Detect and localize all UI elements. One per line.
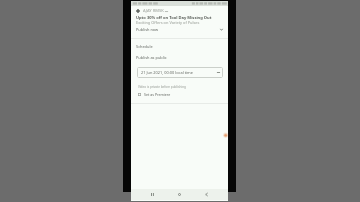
staticText: AJAY RMSK	[143, 8, 164, 14]
staticText: Exciting Offers on Variety of Pulses	[136, 20, 200, 25]
staticText: Upto 30% off on Tool Day Missing Out	[136, 15, 212, 21]
button[interactable]: Set as Premiere	[138, 91, 171, 97]
staticText: Set as Premiere	[144, 92, 171, 97]
button[interactable]: Recent apps	[147, 189, 158, 200]
button[interactable]: Publish now	[131, 26, 228, 32]
button[interactable]: 21 Jun 2021, 00:00 local time	[137, 67, 223, 78]
button[interactable]: Home	[174, 189, 185, 200]
staticText: Publish now	[136, 27, 159, 32]
staticText: Video is private before publishing	[138, 85, 186, 89]
button[interactable]: Back	[201, 189, 212, 200]
button[interactable]: AJAY RMSK	[131, 8, 228, 14]
staticText: Publish as public	[136, 55, 167, 60]
staticText: 21 Jun 2021, 00:00 local time	[141, 70, 193, 75]
staticText: Schedule	[136, 44, 153, 49]
